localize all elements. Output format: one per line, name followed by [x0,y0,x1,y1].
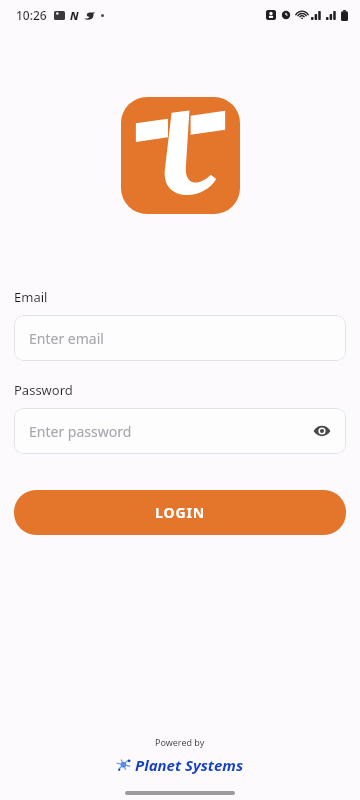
staticText: Planet Systems [135,755,244,775]
staticText: Enter password [29,422,132,441]
staticText: Email [14,288,48,306]
button[interactable]: LOGIN [14,490,346,535]
staticText: Enter email [29,329,104,348]
button[interactable]: Enter password [14,408,346,454]
staticText: LOGIN [155,503,206,522]
button[interactable]: Show password [309,418,335,444]
button[interactable]: Enter email [14,315,346,361]
staticText: Password [14,381,73,399]
staticText: N [70,8,79,23]
staticText: Powered by [155,736,205,748]
staticText: 10:26 [16,7,47,23]
